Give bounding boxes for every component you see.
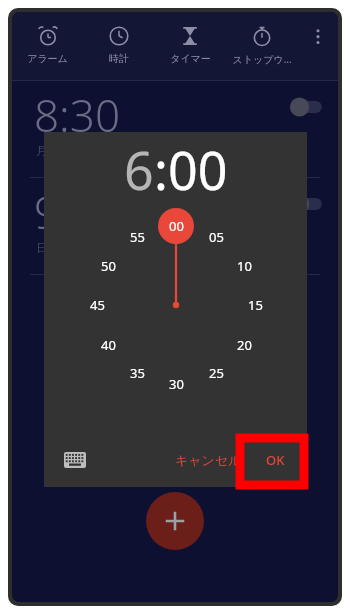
button[interactable]: 10 <box>229 257 259 275</box>
staticText: OK <box>266 451 285 469</box>
staticText: 9:00 <box>34 182 121 242</box>
staticText: 40 <box>101 336 116 354</box>
button[interactable]: 00 <box>168 134 228 205</box>
button[interactable]: 05 <box>201 228 231 246</box>
staticText: 05 <box>209 228 224 246</box>
staticText: : <box>154 134 168 205</box>
button[interactable]: 8:30 <box>12 81 338 177</box>
button[interactable]: 35 <box>122 364 152 382</box>
button[interactable]: 55 <box>122 228 152 246</box>
staticText: 10 <box>237 257 252 275</box>
button[interactable]: 25 <box>201 364 231 382</box>
button[interactable]: 00 <box>161 217 191 235</box>
button[interactable]: Add alarm <box>146 492 204 550</box>
button[interactable]: OK <box>250 441 301 479</box>
staticText: 25 <box>209 364 224 382</box>
staticText: 55 <box>130 228 145 246</box>
button[interactable]: 時計 <box>83 12 154 81</box>
staticText: 月、火、水、木、金 <box>36 143 144 158</box>
staticText: 15 <box>248 296 263 314</box>
button[interactable]: 50 <box>93 257 123 275</box>
staticText: 30 <box>169 375 184 393</box>
button[interactable]: Toggle alarm <box>288 194 324 214</box>
button[interactable]: アラーム <box>12 12 83 81</box>
button[interactable]: タイマー <box>154 12 226 81</box>
staticText: 時計 <box>109 52 129 65</box>
staticText: キャンセル <box>175 452 242 468</box>
staticText: 45 <box>90 296 105 314</box>
button[interactable]: ストップウ… <box>226 12 298 81</box>
button[interactable]: Toggle alarm <box>288 97 324 117</box>
button[interactable]: More options <box>298 12 338 81</box>
button[interactable]: 9:00 <box>12 178 338 274</box>
button[interactable]: Switch to keyboard input <box>58 446 92 474</box>
staticText: ストップウ… <box>232 52 292 66</box>
staticText: 35 <box>130 364 145 382</box>
button[interactable]: キャンセル <box>167 442 250 478</box>
button[interactable]: 15 <box>240 296 270 314</box>
staticText: 00 <box>169 217 184 235</box>
staticText: 20 <box>237 336 252 354</box>
staticText: アラーム <box>27 52 68 65</box>
button[interactable]: 40 <box>93 336 123 354</box>
button[interactable]: 30 <box>161 375 191 393</box>
button[interactable]: 6 <box>124 134 154 205</box>
button[interactable]: 45 <box>82 296 112 314</box>
button[interactable]: 20 <box>229 336 259 354</box>
staticText: 50 <box>101 257 116 275</box>
staticText: タイマー <box>170 52 211 65</box>
staticText: 日、土 <box>36 240 72 255</box>
staticText: 8:30 <box>34 85 121 145</box>
